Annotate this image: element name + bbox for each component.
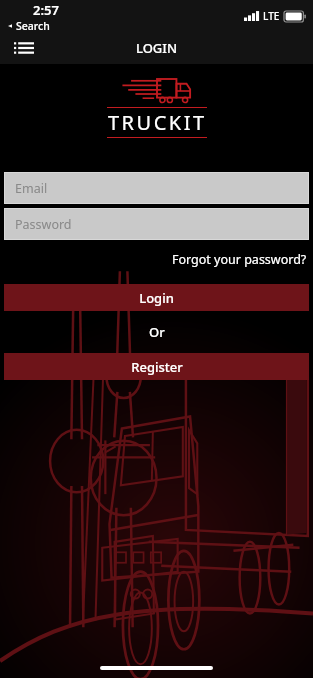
button[interactable]: Password [5,209,308,239]
button[interactable]: Email [5,173,308,203]
staticText: Email [15,180,48,197]
staticText: TRUCKIT [108,109,207,136]
staticText: Register [131,358,183,376]
button[interactable]: Menu [6,32,42,64]
staticText: LTE [263,9,280,23]
button[interactable]: Register [4,353,309,380]
staticText: Search [16,19,50,32]
button[interactable]: Forgot your password? [166,249,313,270]
staticText: Forgot your password? [172,251,307,268]
staticText: Or [149,323,165,341]
button[interactable]: Login [4,284,309,311]
staticText: Password [15,216,72,233]
staticText: 2:57 [33,1,59,19]
staticText: LOGIN [136,39,178,57]
staticText: Login [139,289,174,307]
